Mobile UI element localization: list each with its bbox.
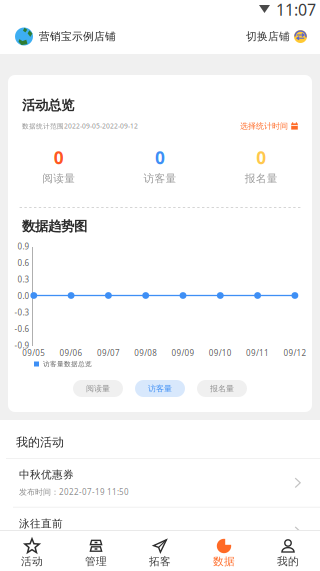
staticText: -0.3 — [14, 307, 29, 318]
button[interactable]: 切换店铺 — [246, 24, 307, 49]
staticText: 访客量数据总览 — [43, 360, 92, 368]
staticText: 09/11 — [246, 348, 269, 358]
staticText: 0.9 — [17, 241, 29, 252]
staticText: 我的活动 — [16, 435, 64, 447]
staticText: 数据趋势图 — [22, 218, 87, 231]
button[interactable]: 数据 — [192, 530, 256, 571]
staticText: 暑期特惠 — [19, 566, 63, 571]
staticText: 0.3 — [17, 274, 29, 285]
staticText: 切换店铺 — [246, 30, 290, 43]
staticText: 管理 — [85, 555, 107, 568]
button[interactable]: 泳往直前 — [0, 508, 320, 556]
staticText: 报名量 — [245, 172, 278, 185]
staticText: 发布时间：2022-07-12 09:30 — [19, 535, 129, 546]
staticText: 活动 — [21, 555, 43, 568]
staticText: 营销宝示例店铺 — [39, 30, 116, 43]
staticText: 访客量 — [143, 172, 176, 185]
button[interactable]: 阅读量 — [73, 380, 123, 397]
staticText: -0.9 — [14, 340, 29, 351]
staticText: 09/12 — [283, 348, 306, 358]
button[interactable]: 选择统计时间 — [240, 121, 298, 131]
staticText: 阅读量 — [42, 172, 75, 185]
staticText: 访客量 — [148, 384, 172, 393]
staticText: 我的 — [277, 555, 299, 568]
staticText: 09/05 — [22, 348, 45, 358]
staticText: 11:07 — [276, 0, 316, 20]
button[interactable]: 管理 — [64, 530, 128, 571]
button[interactable]: 我的 — [256, 530, 320, 571]
button[interactable]: 活动 — [0, 530, 64, 571]
button[interactable]: 中秋优惠券 — [0, 459, 320, 507]
staticText: 0.0 — [17, 291, 29, 301]
staticText: 0 — [54, 146, 64, 169]
staticText: 发布时间：2022-07-19 11:50 — [19, 486, 129, 497]
button[interactable]: 报名量 — [197, 380, 247, 397]
staticText: 09/09 — [171, 348, 194, 358]
staticText: -0.6 — [14, 324, 29, 334]
staticText: 报名量 — [210, 384, 234, 393]
staticText: 09/10 — [209, 348, 232, 358]
staticText: 数据 — [213, 555, 235, 568]
staticText: 09/07 — [97, 348, 120, 358]
button[interactable]: 访客量 — [135, 380, 185, 397]
staticText: 数据统计范围2022-09-05-2022-09-12 — [22, 122, 138, 130]
button[interactable]: 暑期特惠 — [0, 556, 320, 571]
staticText: 0.6 — [17, 258, 29, 268]
staticText: 中秋优惠券 — [19, 468, 74, 481]
staticText: 拓客 — [149, 555, 171, 568]
staticText: 0 — [256, 146, 266, 169]
staticText: 09/06 — [60, 348, 83, 358]
staticText: 活动总览 — [22, 97, 74, 110]
staticText: 09/08 — [134, 348, 157, 358]
staticText: 0 — [155, 146, 165, 169]
staticText: 泳往直前 — [19, 517, 63, 530]
button[interactable]: 拓客 — [128, 530, 192, 571]
staticText: 选择统计时间 — [240, 121, 288, 131]
staticText: 阅读量 — [86, 384, 110, 393]
